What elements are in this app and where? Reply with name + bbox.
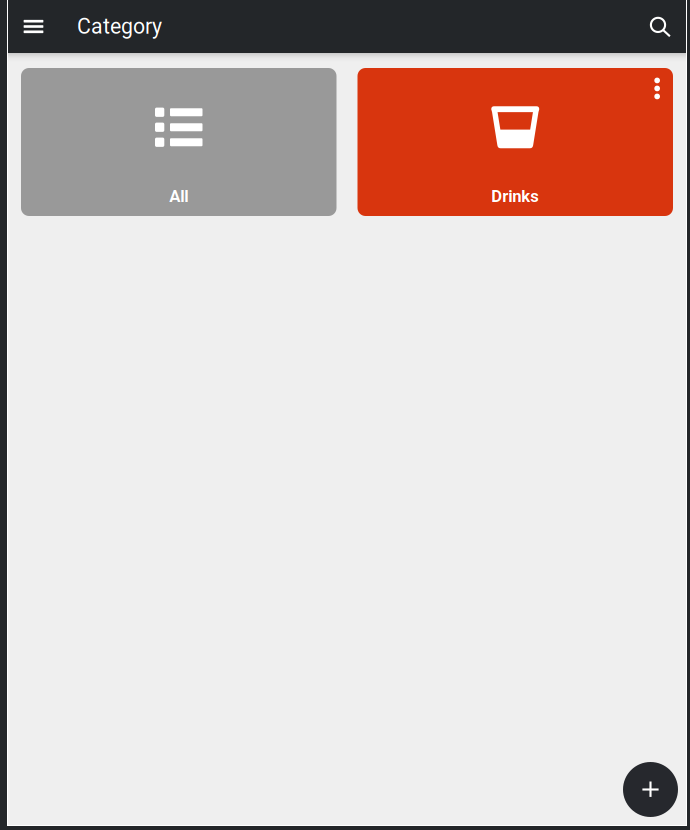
button[interactable]: Drinks (357, 68, 673, 216)
button[interactable]: Add (623, 762, 678, 817)
button[interactable]: Search (635, 0, 685, 53)
button[interactable]: More options (641, 68, 673, 109)
button[interactable]: Menu (7, 0, 60, 53)
staticText: Category (77, 14, 162, 39)
staticText: Drinks (491, 186, 539, 206)
button[interactable]: All (21, 68, 336, 216)
staticText: All (169, 186, 188, 206)
